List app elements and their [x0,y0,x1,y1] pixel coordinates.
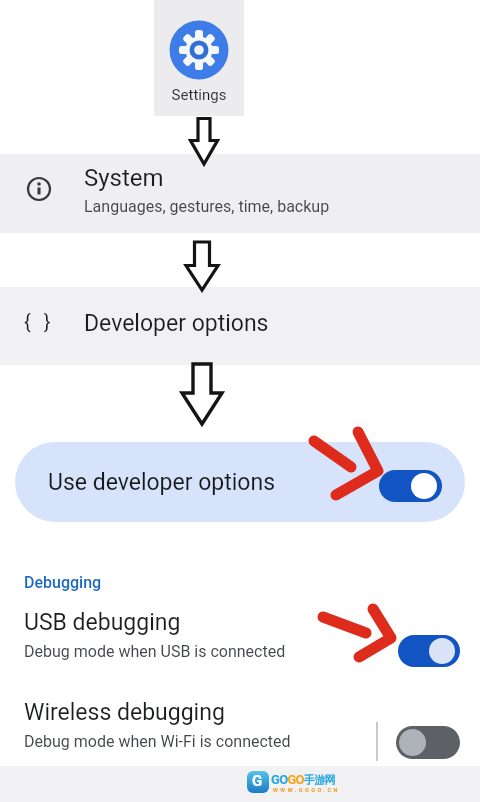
staticText: Use developer options [48,469,276,496]
staticText: Languages, gestures, time, backup [84,197,330,216]
staticText: System [84,164,164,192]
staticText: { } [24,310,55,333]
staticText: GOGO手游网 [271,772,335,787]
staticText: USB debugging [24,609,181,636]
staticText: Debug mode when USB is connected [24,642,286,661]
button[interactable] [15,442,465,522]
button[interactable] [396,726,460,759]
button[interactable] [0,287,480,365]
button[interactable] [398,635,460,667]
button[interactable] [0,154,480,233]
staticText: WWW.GOGO.CN [273,787,341,793]
staticText: Wireless debugging [24,699,225,726]
staticText: G [252,772,263,790]
staticText: Settings [154,86,244,104]
button[interactable] [379,470,442,502]
staticText: Developer options [84,310,269,337]
staticText: Debugging [24,573,102,592]
staticText: Debug mode when Wi-Fi is connected [24,732,291,751]
